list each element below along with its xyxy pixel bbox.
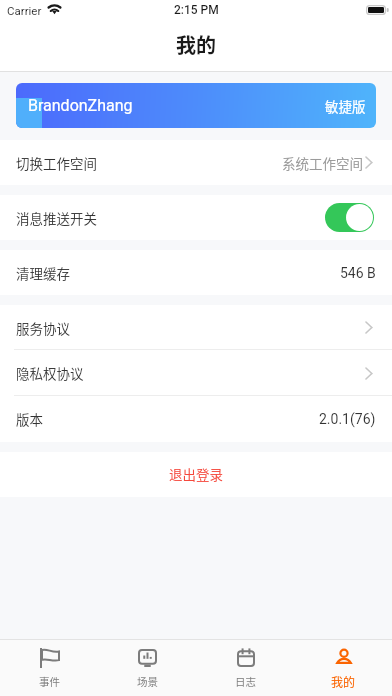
staticText: 我的 xyxy=(331,673,356,690)
staticText: 系统工作空间 xyxy=(282,153,363,173)
staticText: 服务协议 xyxy=(16,318,70,338)
staticText: BrandonZhang xyxy=(28,96,133,115)
button[interactable]: 隐私权协议 xyxy=(0,350,392,396)
button[interactable]: 我的 xyxy=(294,640,392,696)
button[interactable]: 切换工作空间 xyxy=(0,140,392,185)
button[interactable]: 日志 xyxy=(196,640,294,696)
staticText: 事件 xyxy=(39,674,60,689)
staticText: 2.0.1(76) xyxy=(319,411,376,427)
staticText: 我的 xyxy=(176,30,216,59)
staticText: 546 B xyxy=(340,265,376,281)
staticText: 切换工作空间 xyxy=(16,153,97,173)
staticText: 敏捷版 xyxy=(325,96,366,116)
staticText: 版本 xyxy=(16,409,43,429)
button[interactable]: 版本 xyxy=(0,396,392,442)
staticText: 清理缓存 xyxy=(16,263,70,283)
button[interactable]: 服务协议 xyxy=(0,305,392,350)
staticText: 2:15 PM xyxy=(174,3,219,17)
staticText: 退出登录 xyxy=(169,464,223,484)
staticText: 日志 xyxy=(235,674,256,689)
button[interactable]: 退出登录 xyxy=(0,452,392,497)
button[interactable]: 消息推送开关 xyxy=(325,203,374,232)
staticText: 场景 xyxy=(137,674,158,689)
staticText: 隐私权协议 xyxy=(16,363,84,383)
button[interactable]: 场景 xyxy=(98,640,196,696)
staticText: 消息推送开关 xyxy=(16,208,97,228)
button[interactable]: 清理缓存 xyxy=(0,250,392,295)
button[interactable]: 事件 xyxy=(0,640,98,696)
button[interactable]: BrandonZhang xyxy=(16,83,376,128)
staticText: Carrier xyxy=(7,4,42,17)
